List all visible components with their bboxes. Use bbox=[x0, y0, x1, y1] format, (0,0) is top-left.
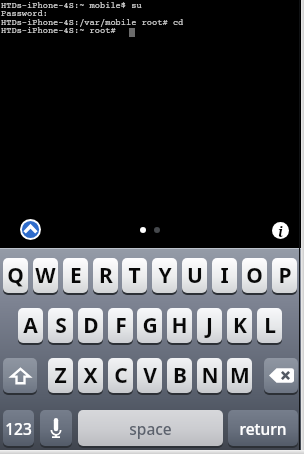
button[interactable]: X bbox=[78, 358, 103, 393]
staticText: N bbox=[201, 361, 219, 390]
button[interactable]: Dictate bbox=[40, 410, 72, 446]
button[interactable]: O bbox=[242, 258, 267, 293]
staticText: M bbox=[230, 361, 250, 390]
button[interactable]: C bbox=[108, 358, 133, 393]
staticText: X bbox=[83, 361, 98, 390]
button[interactable]: J bbox=[197, 308, 222, 343]
button[interactable]: return bbox=[228, 410, 298, 446]
staticText: Q bbox=[7, 261, 24, 290]
staticText: return bbox=[239, 418, 287, 439]
button[interactable]: U bbox=[182, 258, 207, 293]
staticText: F bbox=[115, 311, 127, 340]
button[interactable]: W bbox=[33, 258, 58, 293]
staticText: I bbox=[220, 261, 229, 290]
button[interactable]: H bbox=[167, 308, 192, 343]
staticText: O bbox=[246, 261, 263, 290]
button[interactable]: T bbox=[122, 258, 147, 293]
button[interactable]: A bbox=[18, 308, 43, 343]
button[interactable]: Y bbox=[152, 258, 177, 293]
staticText: Z bbox=[54, 361, 67, 390]
button[interactable]: Shift bbox=[3, 358, 37, 393]
button[interactable]: Z bbox=[48, 358, 73, 393]
button[interactable]: I bbox=[212, 258, 237, 293]
button[interactable]: S bbox=[48, 308, 73, 343]
button[interactable]: Backspace bbox=[264, 358, 298, 393]
staticText: C bbox=[114, 361, 128, 390]
button[interactable]: G bbox=[137, 308, 162, 343]
button[interactable]: L bbox=[257, 308, 282, 343]
button[interactable]: K bbox=[227, 308, 252, 343]
staticText: J bbox=[206, 311, 213, 340]
staticText: i bbox=[278, 222, 283, 239]
button[interactable]: V bbox=[137, 358, 162, 393]
staticText: G bbox=[142, 311, 158, 340]
staticText: 123 bbox=[5, 418, 32, 439]
button[interactable]: D bbox=[78, 308, 103, 343]
staticText: P bbox=[278, 261, 292, 290]
staticText: L bbox=[264, 311, 276, 340]
button[interactable]: Q bbox=[3, 258, 28, 293]
button[interactable]: Info bbox=[272, 222, 289, 239]
button[interactable]: 123 bbox=[3, 410, 34, 446]
button[interactable]: E bbox=[63, 258, 88, 293]
staticText: HTDs-iPhone-4S:~ mobile$ su bbox=[1, 1, 142, 11]
staticText: R bbox=[99, 261, 113, 290]
button[interactable]: R bbox=[93, 258, 118, 293]
staticText: S bbox=[55, 311, 67, 340]
staticText: U bbox=[187, 261, 203, 290]
staticText: D bbox=[83, 311, 99, 340]
staticText: Password: bbox=[1, 9, 48, 19]
button[interactable]: Scroll up bbox=[20, 219, 41, 240]
staticText: H bbox=[171, 311, 188, 340]
button[interactable]: F bbox=[108, 308, 133, 343]
staticText: K bbox=[233, 311, 247, 340]
staticText: HTDs-iPhone-4S:/var/mobile root# cd bbox=[1, 18, 184, 28]
staticText: B bbox=[173, 361, 187, 390]
staticText: V bbox=[143, 361, 157, 390]
button[interactable]: P bbox=[272, 258, 297, 293]
staticText: A bbox=[23, 311, 38, 340]
staticText: space bbox=[129, 418, 172, 439]
staticText: E bbox=[70, 261, 82, 290]
staticText: W bbox=[35, 261, 56, 290]
staticText: HTDs-iPhone-4S:~ root# bbox=[1, 26, 121, 36]
staticText: T bbox=[128, 261, 141, 290]
button[interactable]: N bbox=[197, 358, 222, 393]
button[interactable]: B bbox=[167, 358, 192, 393]
staticText: Y bbox=[158, 261, 172, 290]
button[interactable]: space bbox=[78, 410, 223, 446]
button[interactable]: M bbox=[227, 358, 252, 393]
